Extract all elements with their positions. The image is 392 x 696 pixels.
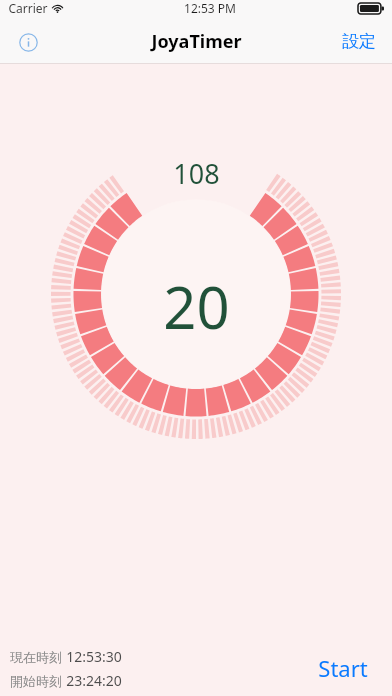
staticText: 12:53:30: [66, 647, 122, 666]
button[interactable]: 設定: [336, 25, 382, 58]
staticText: 開始時刻: [10, 673, 62, 689]
staticText: 設定: [342, 31, 376, 52]
staticText: 23:24:20: [66, 671, 122, 690]
button[interactable]: Start: [308, 645, 378, 691]
staticText: 現在時刻: [10, 649, 62, 665]
staticText: 12:53 PM: [184, 0, 236, 16]
button[interactable]: Info: [10, 24, 46, 60]
staticText: Carrier: [8, 0, 48, 16]
staticText: JoyaTimer: [151, 29, 242, 54]
staticText: 108: [173, 155, 220, 192]
staticText: 20: [163, 267, 230, 346]
staticText: Start: [318, 653, 368, 683]
